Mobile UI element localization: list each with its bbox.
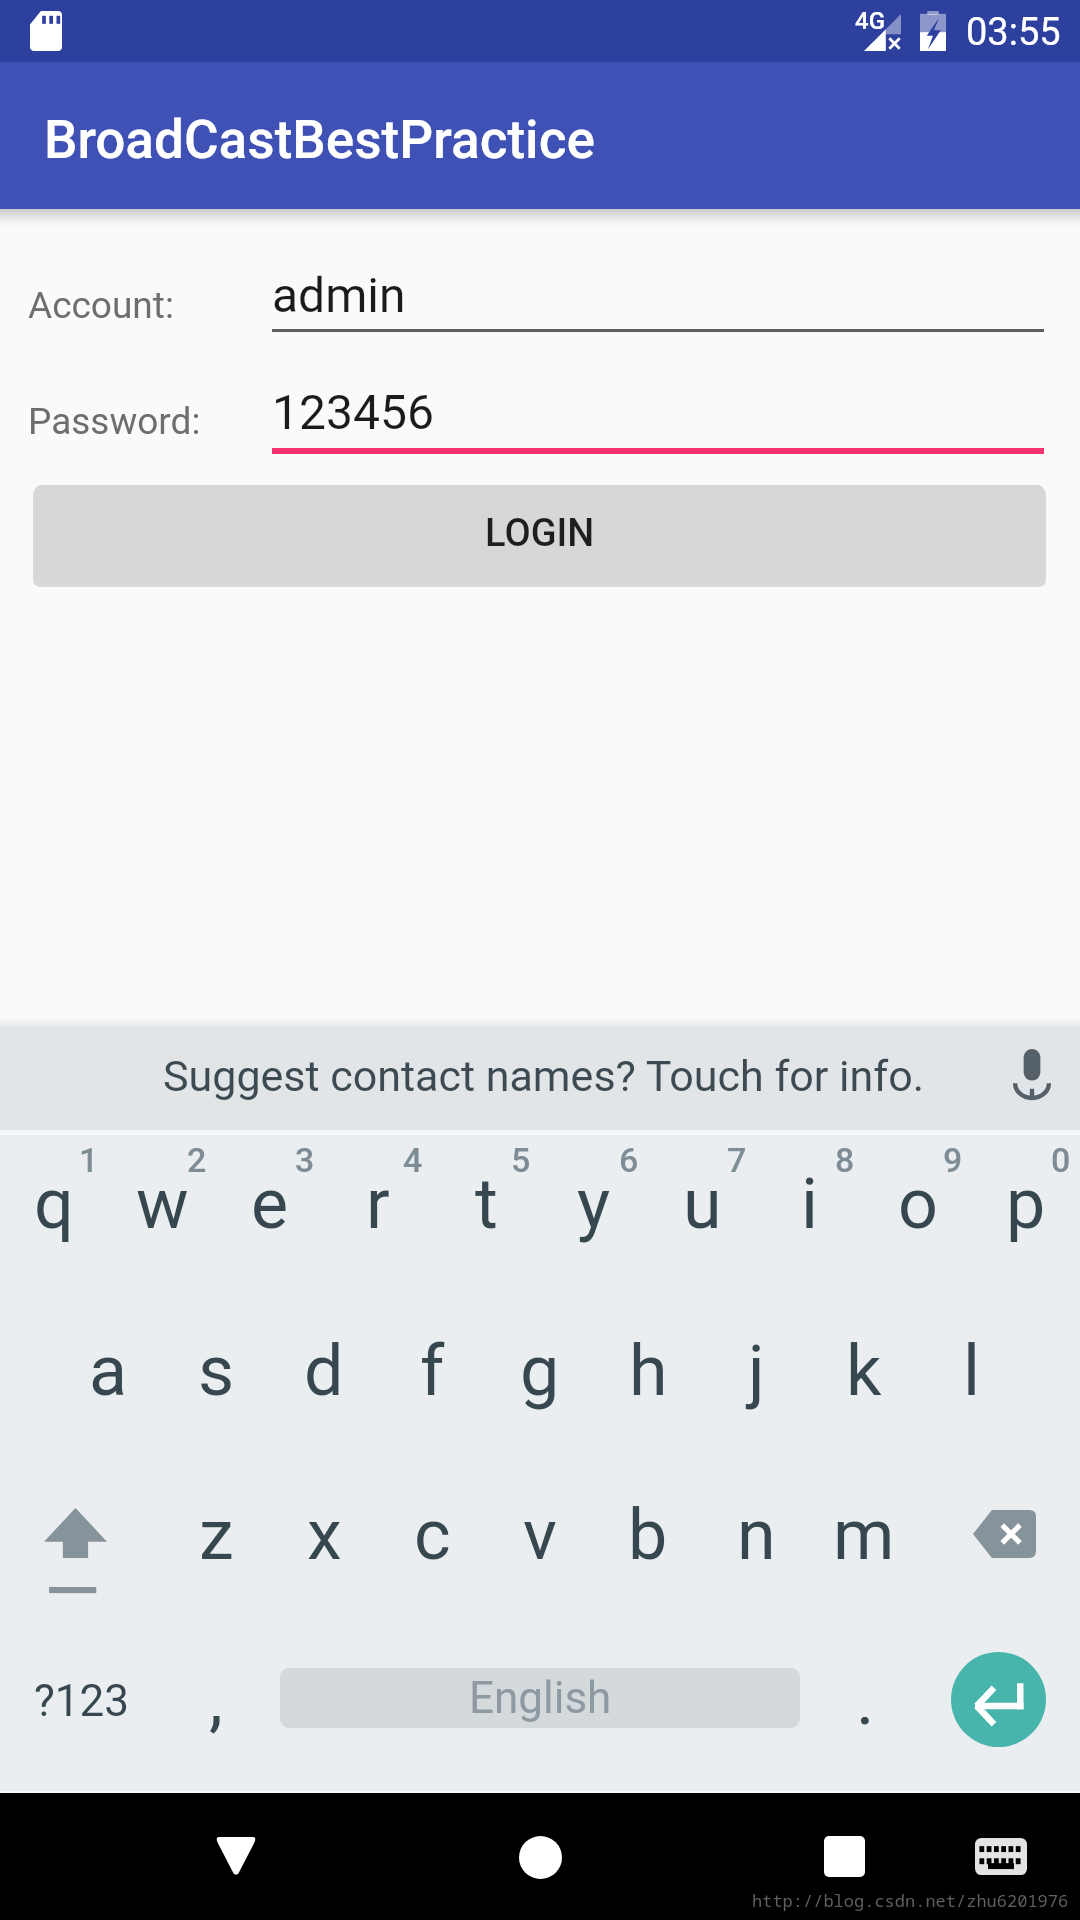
staticText: 03:55 [966,10,1061,55]
staticText: 4 [403,1140,423,1180]
button[interactable]: English [280,1668,800,1728]
staticText: 123456 [272,384,434,440]
staticText: q [34,1163,74,1245]
button[interactable]: l [918,1299,1026,1464]
button[interactable]: LOGIN [35,485,1044,582]
staticText: y [577,1163,611,1245]
button[interactable]: Enter [951,1652,1046,1747]
staticText: b [628,1494,668,1576]
button[interactable]: s [162,1299,270,1464]
button[interactable]: u [648,1135,756,1299]
button[interactable]: Delete [918,1464,1080,1629]
button[interactable]: Home [485,1802,595,1912]
button[interactable]: i [756,1135,864,1299]
button[interactable]: j [702,1299,810,1464]
staticText: 5 [511,1140,531,1180]
staticText: ?123 [34,1675,129,1727]
staticText: o [898,1163,938,1245]
staticText: k [846,1330,882,1412]
button[interactable]: b [594,1464,702,1629]
staticText: 2 [187,1140,207,1180]
button[interactable]: k [810,1299,918,1464]
staticText: 8 [835,1140,855,1180]
staticText: p [1006,1163,1046,1245]
staticText: w [136,1163,189,1245]
button[interactable]: Shift [0,1464,162,1629]
staticText: x [307,1494,342,1576]
staticText: 6 [619,1140,639,1180]
staticText: English [469,1672,612,1724]
button[interactable]: o [864,1135,972,1299]
staticText: f [420,1330,445,1412]
staticText: 1 [79,1140,99,1180]
staticText: m [833,1494,895,1576]
staticText: Suggest contact names? Touch for info. [163,1051,925,1101]
button[interactable]: Suggest contact names? Touch for info. [0,1027,1080,1130]
button[interactable]: r [324,1135,432,1299]
staticText: g [520,1330,560,1412]
button[interactable]: Recents [790,1793,898,1920]
staticText: r [366,1163,390,1245]
staticText: e [251,1163,289,1245]
staticText: h [629,1330,668,1412]
button[interactable]: Voice input [993,1039,1070,1119]
staticText: j [748,1330,765,1412]
staticText: v [523,1494,557,1576]
staticText: Password: [28,400,201,443]
button[interactable]: g [486,1299,594,1464]
staticText: admin [272,267,406,323]
button[interactable]: c [378,1464,486,1629]
button[interactable]: d [270,1299,378,1464]
button[interactable]: h [594,1299,702,1464]
staticText: i [801,1163,819,1245]
staticText: 4G [855,7,885,35]
staticText: BroadCastBestPractice [44,109,595,171]
button[interactable]: . [810,1629,918,1791]
staticText: l [963,1330,981,1412]
button[interactable]: z [162,1464,270,1629]
staticText: http://blog.csdn.net/zhu6201976 [752,1889,1069,1912]
button[interactable]: q [0,1135,108,1299]
staticText: t [475,1163,498,1245]
button[interactable]: p [972,1135,1080,1299]
button[interactable]: x [270,1464,378,1629]
staticText: d [304,1330,344,1412]
button[interactable]: m [810,1464,918,1629]
staticText: . [856,1659,875,1741]
staticText: n [737,1494,776,1576]
staticText: s [198,1330,235,1412]
button[interactable]: ?123 [0,1629,162,1791]
button[interactable]: Switch keyboard [950,1793,1052,1920]
button[interactable]: n [702,1464,810,1629]
button[interactable]: Back [175,1793,297,1920]
button[interactable]: f [378,1299,486,1464]
staticText: 9 [943,1140,963,1180]
staticText: u [683,1163,722,1245]
button[interactable]: e [216,1135,324,1299]
staticText: Account: [28,284,174,327]
staticText: 3 [295,1140,315,1180]
staticText: LOGIN [485,511,595,556]
staticText: 0 [1051,1140,1071,1180]
button[interactable]: y [540,1135,648,1299]
staticText: 7 [727,1140,747,1180]
button[interactable]: a [54,1299,162,1464]
button[interactable]: , [162,1629,270,1791]
staticText: a [89,1330,128,1412]
button[interactable]: v [486,1464,594,1629]
button[interactable]: t [432,1135,540,1299]
staticText: z [199,1494,234,1576]
button[interactable]: w [108,1135,216,1299]
staticText: , [209,1659,223,1741]
staticText: c [414,1494,451,1576]
